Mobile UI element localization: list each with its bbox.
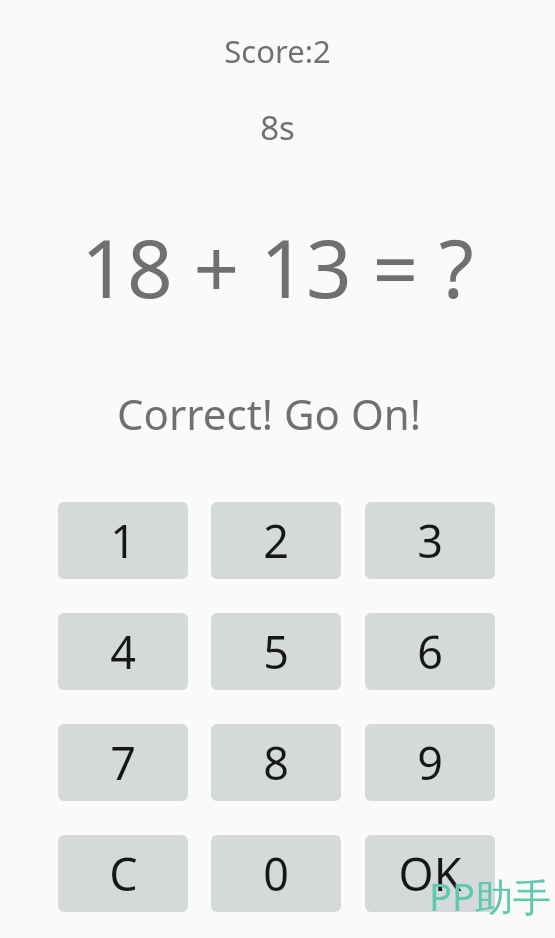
staticText: 2 — [263, 510, 289, 571]
staticText: PP助手 — [429, 870, 551, 922]
button[interactable]: C — [58, 835, 188, 912]
staticText: 7 — [110, 732, 136, 793]
button[interactable]: 8 — [211, 724, 341, 801]
staticText: 3 — [417, 510, 443, 571]
staticText: 8 — [263, 732, 289, 793]
staticText: 8s — [260, 105, 295, 150]
staticText: 9 — [417, 732, 443, 793]
button[interactable]: 0 — [211, 835, 341, 912]
button[interactable]: 7 — [58, 724, 188, 801]
button[interactable]: 6 — [365, 613, 495, 690]
staticText: Correct! Go On! — [117, 385, 421, 442]
staticText: OK — [398, 843, 462, 904]
staticText: 6 — [417, 621, 443, 682]
staticText: 4 — [110, 621, 136, 682]
button[interactable]: 9 — [365, 724, 495, 801]
button[interactable]: OK — [365, 835, 495, 912]
staticText: 1 — [110, 510, 136, 571]
button[interactable]: 4 — [58, 613, 188, 690]
button[interactable]: 1 — [58, 502, 188, 579]
button[interactable]: 3 — [365, 502, 495, 579]
staticText: Score:2 — [224, 30, 331, 72]
button[interactable]: 5 — [211, 613, 341, 690]
button[interactable]: 2 — [211, 502, 341, 579]
staticText: 5 — [263, 621, 289, 682]
staticText: 0 — [263, 843, 289, 904]
staticText: 18 + 13 = ? — [81, 212, 474, 321]
staticText: C — [109, 843, 138, 904]
